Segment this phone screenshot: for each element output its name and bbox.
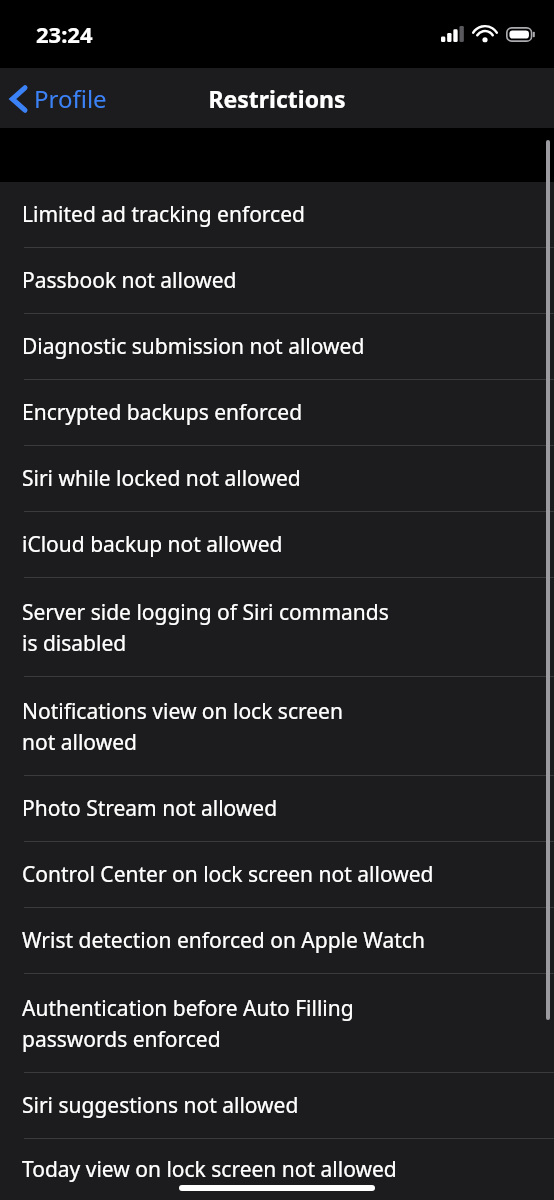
button[interactable]: Wrist detection enforced on Apple Watch	[0, 908, 554, 973]
staticText: Server side logging of Siri commands is …	[22, 598, 389, 657]
button[interactable]: iCloud backup not allowed	[0, 512, 554, 577]
button[interactable]: Authentication before Auto Filling passw…	[0, 974, 554, 1072]
staticText: Limited ad tracking enforced	[22, 200, 305, 229]
staticText: Diagnostic submission not allowed	[22, 332, 365, 361]
staticText: Notifications view on lock screen not al…	[22, 697, 343, 756]
staticText: Photo Stream not allowed	[22, 794, 278, 823]
staticText: Today view on lock screen not allowed	[22, 1155, 397, 1184]
staticText: Control Center on lock screen not allowe…	[22, 860, 434, 889]
staticText: iCloud backup not allowed	[22, 530, 283, 559]
staticText: Restrictions	[208, 83, 346, 114]
staticText: Profile	[34, 82, 107, 115]
button[interactable]: Server side logging of Siri commands is …	[0, 578, 554, 676]
button[interactable]: Photo Stream not allowed	[0, 776, 554, 841]
button[interactable]: Diagnostic submission not allowed	[0, 314, 554, 379]
staticText: Wrist detection enforced on Apple Watch	[22, 926, 425, 955]
button[interactable]: Back	[0, 74, 121, 123]
button[interactable]: Notifications view on lock screen not al…	[0, 677, 554, 775]
staticText: Passbook not allowed	[22, 266, 237, 295]
other: Back	[10, 85, 27, 113]
staticText: Siri while locked not allowed	[22, 464, 301, 493]
button[interactable]: Limited ad tracking enforced	[0, 182, 554, 247]
button[interactable]: Control Center on lock screen not allowe…	[0, 842, 554, 907]
button[interactable]: Today view on lock screen not allowed	[0, 1139, 554, 1200]
button[interactable]: Passbook not allowed	[0, 248, 554, 313]
button[interactable]: Siri while locked not allowed	[0, 446, 554, 511]
button[interactable]: Encrypted backups enforced	[0, 380, 554, 445]
staticText: Siri suggestions not allowed	[22, 1091, 299, 1120]
staticText: Authentication before Auto Filling passw…	[22, 994, 354, 1053]
staticText: 23:24	[36, 19, 93, 49]
button[interactable]: Siri suggestions not allowed	[0, 1073, 554, 1138]
staticText: Encrypted backups enforced	[22, 398, 303, 427]
